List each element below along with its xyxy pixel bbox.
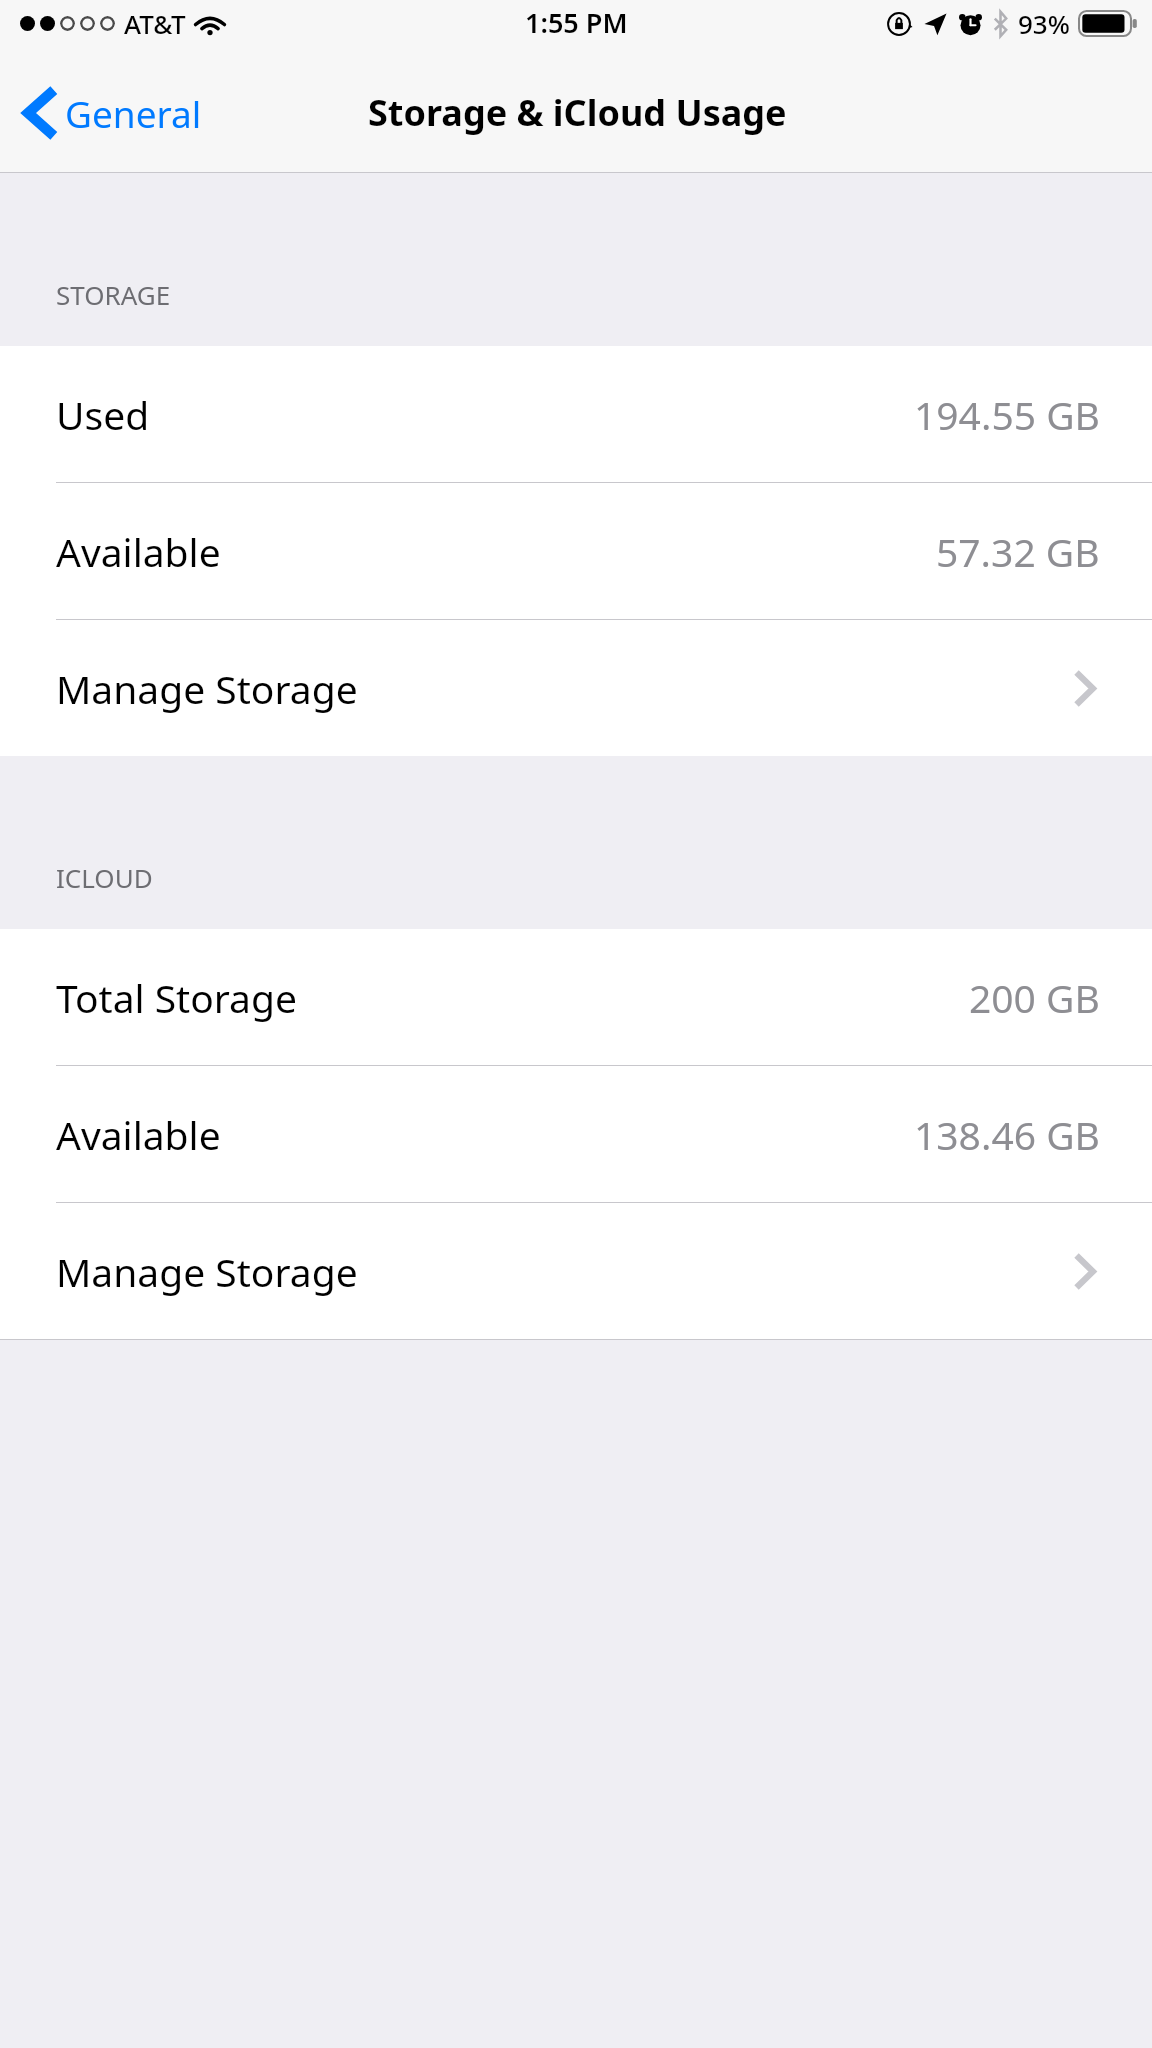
staticText: 200 GB <box>969 971 1100 1024</box>
button[interactable]: General <box>0 80 216 146</box>
staticText: 1:55 PM <box>525 4 628 41</box>
button[interactable]: Available <box>0 483 1152 620</box>
staticText: ICLOUD <box>56 860 153 895</box>
other: Location <box>923 12 947 36</box>
staticText: Manage Storage <box>56 662 358 715</box>
button[interactable]: Manage Storage <box>0 1203 1152 1339</box>
staticText: Manage Storage <box>56 1245 358 1298</box>
button[interactable]: Manage Storage <box>0 620 1152 756</box>
staticText: General <box>65 88 202 138</box>
other: Alarm <box>958 11 983 36</box>
staticText: Available <box>56 1108 221 1161</box>
other: Bluetooth <box>993 11 1008 37</box>
staticText: STORAGE <box>56 277 171 312</box>
staticText: 138.46 GB <box>914 1108 1100 1161</box>
staticText: Used <box>56 388 150 441</box>
staticText: 194.55 GB <box>914 388 1100 441</box>
button[interactable]: Total Storage <box>0 929 1152 1066</box>
other: Rotation Lock <box>886 11 912 37</box>
staticText: 57.32 GB <box>936 525 1100 578</box>
button[interactable]: Used <box>0 346 1152 483</box>
button[interactable]: Available <box>0 1066 1152 1203</box>
staticText: Storage & iCloud Usage <box>368 88 787 137</box>
staticText: 93% <box>1018 6 1070 41</box>
staticText: AT&T <box>124 6 186 41</box>
other: Battery <box>1078 10 1138 37</box>
staticText: Total Storage <box>56 971 297 1024</box>
staticText: Available <box>56 525 221 578</box>
